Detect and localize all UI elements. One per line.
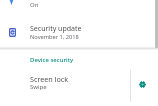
staticText: Swipe [30, 83, 47, 91]
button[interactable]: Screen lock settings [131, 70, 153, 102]
button[interactable]: On [0, 0, 158, 18]
staticText: On [30, 1, 39, 9]
button[interactable]: Security update [0, 22, 158, 46]
staticText: Security update [30, 24, 82, 34]
staticText: Screen lock [30, 74, 69, 84]
button[interactable]: Screen lock [0, 70, 130, 102]
staticText: Device security [30, 56, 74, 64]
staticText: November 1, 2018 [30, 33, 79, 41]
